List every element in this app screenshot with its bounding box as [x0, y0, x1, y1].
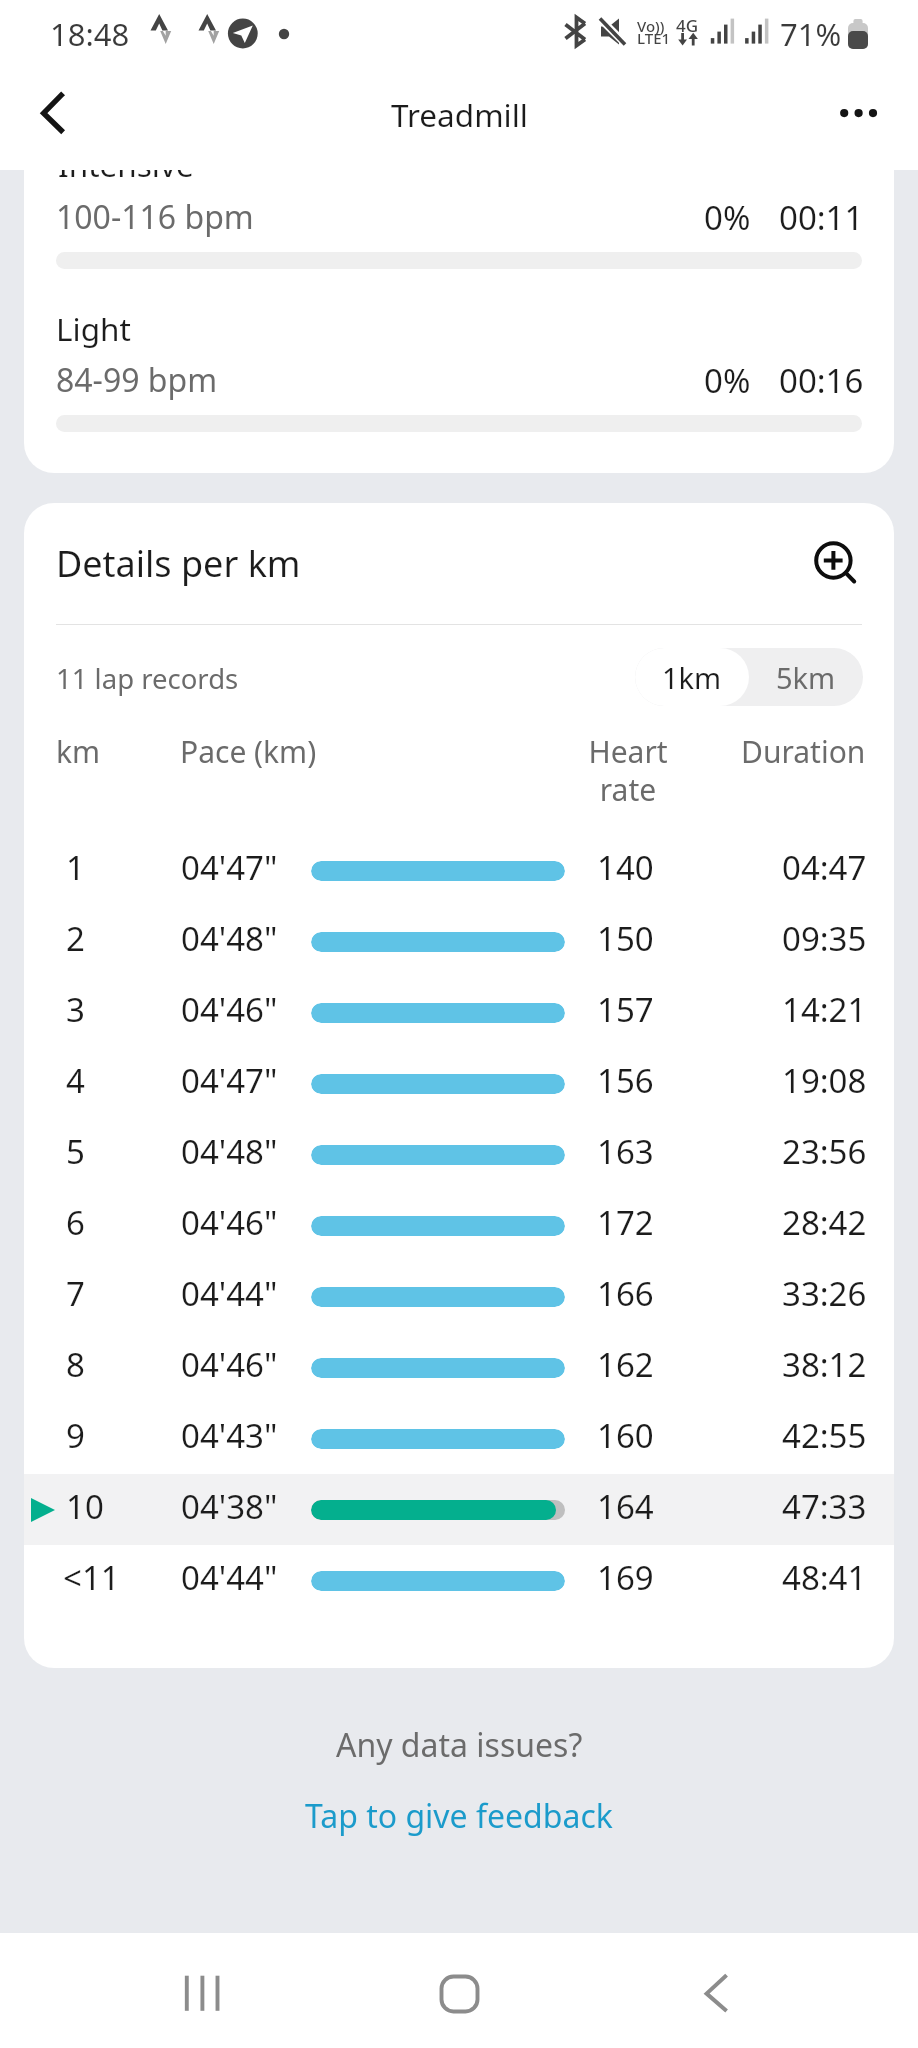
- staticText: 04'44": [181, 1555, 278, 1600]
- staticText: 163: [597, 1129, 654, 1174]
- staticText: Details per km: [56, 539, 301, 588]
- staticText: 09:35: [782, 916, 867, 961]
- staticText: km: [56, 731, 101, 772]
- button[interactable]: 1: [24, 835, 894, 906]
- staticText: Pace (km): [180, 731, 317, 772]
- staticText: 23:56: [782, 1129, 867, 1174]
- staticText: Tap to give feedback: [305, 1794, 613, 1838]
- button[interactable]: 7: [24, 1261, 894, 1332]
- button[interactable]: 9: [24, 1403, 894, 1474]
- button[interactable]: More options: [818, 70, 918, 170]
- staticText: 156: [597, 1058, 654, 1103]
- staticText: 1km: [662, 658, 722, 697]
- button[interactable]: Recent apps: [0, 1933, 306, 2048]
- button[interactable]: 10: [24, 1474, 894, 1545]
- staticText: 47:33: [782, 1484, 867, 1529]
- staticText: 3: [66, 987, 85, 1032]
- staticText: Heart rate: [558, 731, 698, 810]
- staticText: 04'47": [181, 1058, 278, 1103]
- staticText: 157: [597, 987, 654, 1032]
- staticText: 04'44": [181, 1271, 278, 1316]
- staticText: Intensive: [58, 170, 194, 186]
- staticText: 150: [597, 916, 654, 961]
- staticText: 10: [66, 1484, 104, 1529]
- staticText: 04'46": [181, 1200, 278, 1245]
- staticText: 04'46": [181, 1342, 278, 1387]
- staticText: 160: [597, 1413, 654, 1458]
- staticText: 04'46": [181, 987, 278, 1032]
- button[interactable]: 4: [24, 1048, 894, 1119]
- staticText: 0%: [704, 195, 751, 237]
- button[interactable]: Home: [306, 1933, 612, 2048]
- staticText: 8: [66, 1342, 85, 1387]
- staticText: 04'47": [181, 845, 278, 890]
- staticText: 7: [66, 1271, 85, 1316]
- button[interactable]: Zoom in: [798, 522, 882, 606]
- staticText: 38:12: [782, 1342, 867, 1387]
- staticText: 166: [597, 1271, 654, 1316]
- staticText: Vo)): [637, 16, 665, 36]
- staticText: 1: [66, 845, 85, 890]
- staticText: 4: [66, 1058, 85, 1103]
- staticText: 00:16: [779, 358, 864, 400]
- staticText: 04'48": [181, 1129, 278, 1174]
- button[interactable]: <11: [24, 1545, 894, 1616]
- staticText: LTE1: [637, 28, 671, 48]
- staticText: 2: [66, 916, 85, 961]
- button[interactable]: Back: [612, 1933, 918, 2048]
- staticText: 04'38": [181, 1484, 278, 1529]
- button[interactable]: 8: [24, 1332, 894, 1403]
- button[interactable]: 1km: [635, 648, 749, 706]
- staticText: 48:41: [782, 1555, 867, 1600]
- staticText: 04:47: [782, 845, 867, 890]
- staticText: 84-99 bpm: [56, 358, 218, 400]
- staticText: 5km: [776, 658, 836, 697]
- staticText: <11: [63, 1555, 120, 1600]
- staticText: 71%: [780, 13, 842, 55]
- staticText: 0%: [704, 358, 751, 400]
- staticText: Any data issues?: [336, 1723, 583, 1767]
- button[interactable]: Tap to give feedback: [291, 1789, 627, 1843]
- staticText: 5: [66, 1129, 85, 1174]
- staticText: 9: [66, 1413, 85, 1458]
- staticText: 42:55: [782, 1413, 867, 1458]
- staticText: 33:26: [782, 1271, 867, 1316]
- staticText: 140: [597, 845, 654, 890]
- staticText: 18:48: [50, 13, 130, 55]
- staticText: 04'43": [181, 1413, 278, 1458]
- staticText: 28:42: [782, 1200, 867, 1245]
- staticText: 14:21: [782, 987, 867, 1032]
- staticText: Light: [56, 307, 131, 350]
- staticText: 04'48": [181, 916, 278, 961]
- staticText: 172: [597, 1200, 654, 1245]
- button[interactable]: Back: [0, 70, 100, 170]
- staticText: 00:11: [779, 195, 864, 237]
- button[interactable]: 3: [24, 977, 894, 1048]
- staticText: Duration: [741, 731, 866, 772]
- staticText: 164: [597, 1484, 654, 1529]
- staticText: 6: [66, 1200, 85, 1245]
- staticText: 4G: [676, 14, 699, 37]
- button[interactable]: 2: [24, 906, 894, 977]
- staticText: Treadmill: [391, 93, 528, 136]
- button[interactable]: 5: [24, 1119, 894, 1190]
- staticText: 100-116 bpm: [56, 195, 254, 237]
- staticText: 11 lap records: [56, 660, 239, 697]
- staticText: 162: [597, 1342, 654, 1387]
- button[interactable]: 5km: [749, 648, 863, 706]
- staticText: 169: [597, 1555, 654, 1600]
- staticText: 19:08: [782, 1058, 867, 1103]
- button[interactable]: 6: [24, 1190, 894, 1261]
